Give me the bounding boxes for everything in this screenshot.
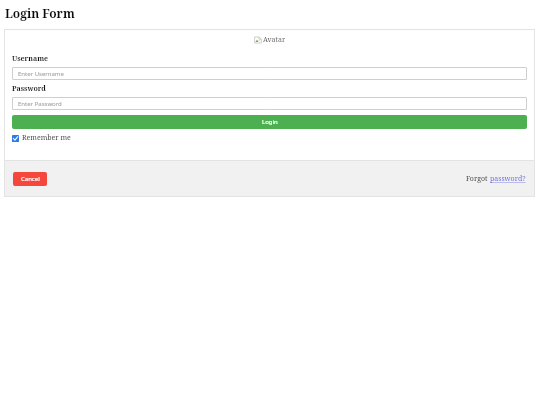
staticText: password? xyxy=(490,174,526,184)
staticText: Cancel xyxy=(21,175,40,183)
staticText: Remember me xyxy=(22,133,71,143)
button[interactable]: Enter Password xyxy=(12,97,527,110)
staticText: Avatar xyxy=(263,35,286,45)
button[interactable]: Login xyxy=(12,115,527,129)
staticText: Enter Username xyxy=(18,70,64,78)
staticText: Login Form xyxy=(5,5,75,21)
button[interactable]: Enter Username xyxy=(12,67,527,80)
other: Remember me checkbox xyxy=(12,135,19,142)
staticText: Enter Password xyxy=(18,100,62,108)
other: Avatar image placeholder xyxy=(254,36,262,44)
staticText: Username xyxy=(12,54,49,64)
button[interactable]: Remember me checkbox xyxy=(12,133,71,143)
button[interactable]: password? xyxy=(490,174,526,184)
button[interactable]: Cancel xyxy=(13,172,47,186)
staticText: Login xyxy=(262,118,278,126)
staticText: Forgot xyxy=(466,174,490,184)
staticText: Password xyxy=(12,84,46,94)
